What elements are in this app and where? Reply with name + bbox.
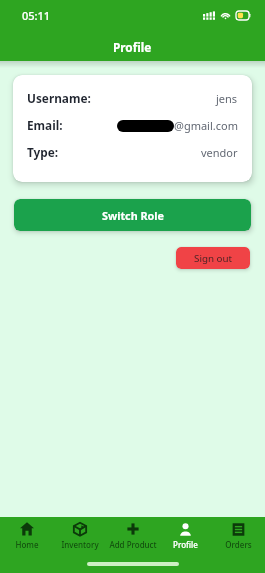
staticText: Email:: [27, 117, 63, 133]
staticText: Profile: [113, 39, 152, 55]
staticText: Inventory: [61, 539, 99, 550]
staticText: jens: [216, 91, 238, 106]
button[interactable]: Sign out: [176, 247, 250, 269]
button[interactable]: Home: [0, 517, 53, 554]
staticText: Type:: [27, 144, 59, 160]
button[interactable]: Orders: [212, 517, 265, 554]
button[interactable]: Add Product: [106, 517, 159, 554]
staticText: 05:11: [22, 8, 51, 23]
staticText: @gmail.com: [174, 118, 238, 133]
staticText: Username:: [27, 90, 91, 106]
staticText: Orders: [225, 539, 252, 550]
button[interactable]: Switch Role: [14, 199, 251, 231]
staticText: Switch Role: [102, 208, 164, 223]
other: Signal strength: [203, 10, 215, 20]
button[interactable]: Profile: [159, 517, 212, 554]
staticText: Add Product: [109, 539, 157, 550]
staticText: Sign out: [194, 252, 233, 265]
staticText: Profile: [173, 539, 198, 550]
staticText: vendor: [201, 145, 238, 160]
button[interactable]: Inventory: [53, 517, 106, 554]
other: Battery: [236, 11, 251, 20]
other: Wi-Fi: [220, 10, 231, 21]
staticText: Home: [15, 539, 39, 550]
